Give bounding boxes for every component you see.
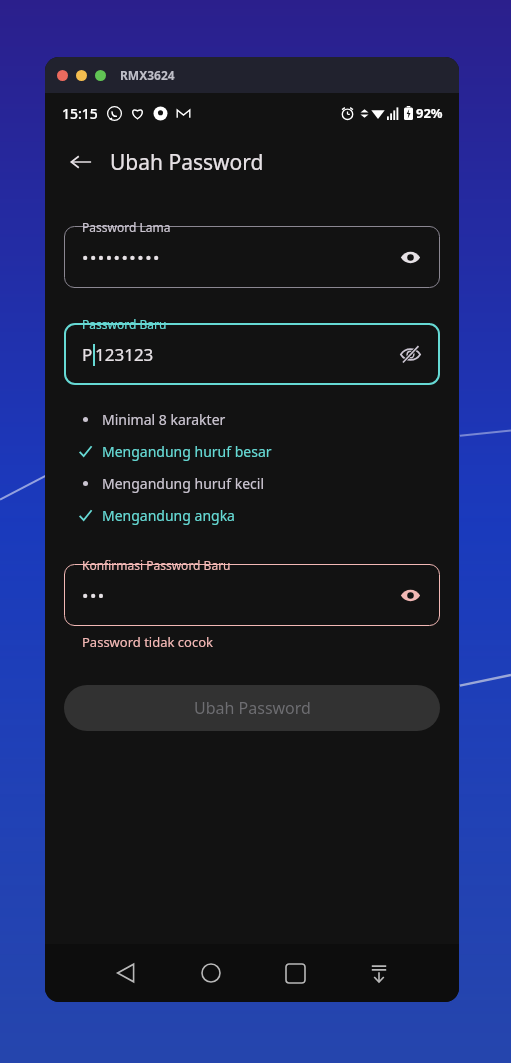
- staticText: P: [82, 343, 93, 366]
- staticText: Minimal 8 karakter: [102, 410, 226, 429]
- button[interactable]: Back: [61, 142, 101, 182]
- button[interactable]: Show password: [394, 579, 426, 611]
- staticText: Mengandung huruf besar: [102, 442, 272, 461]
- staticText: 123123: [95, 343, 154, 366]
- staticText: Mengandung huruf kecil: [102, 474, 265, 493]
- button[interactable]: Home: [189, 951, 233, 995]
- button[interactable]: ••••••••••: [64, 226, 440, 288]
- button[interactable]: Ubah Password: [64, 685, 440, 731]
- staticText: RMX3624: [120, 67, 175, 83]
- button[interactable]: Recents: [273, 951, 317, 995]
- button[interactable]: Hide password: [394, 338, 426, 370]
- staticText: Ubah Password: [194, 697, 311, 719]
- button[interactable]: [95, 70, 106, 81]
- staticText: Mengandung angka: [102, 506, 235, 525]
- staticText: Konfirmasi Password Baru: [82, 557, 231, 573]
- staticText: 15:15: [62, 104, 98, 123]
- button[interactable]: [57, 70, 68, 81]
- staticText: Password Baru: [82, 316, 167, 332]
- staticText: 92%: [416, 104, 443, 122]
- button[interactable]: Back: [104, 951, 148, 995]
- button[interactable]: [76, 70, 87, 81]
- button[interactable]: •••: [64, 564, 440, 626]
- staticText: ••••••••••: [82, 246, 161, 269]
- staticText: •••: [82, 584, 106, 607]
- staticText: Password Lama: [82, 219, 171, 235]
- staticText: Ubah Password: [110, 148, 264, 177]
- button[interactable]: Show password: [394, 241, 426, 273]
- button[interactable]: Downloads: [357, 951, 401, 995]
- button[interactable]: P: [64, 323, 440, 385]
- staticText: Password tidak cocok: [82, 633, 213, 651]
